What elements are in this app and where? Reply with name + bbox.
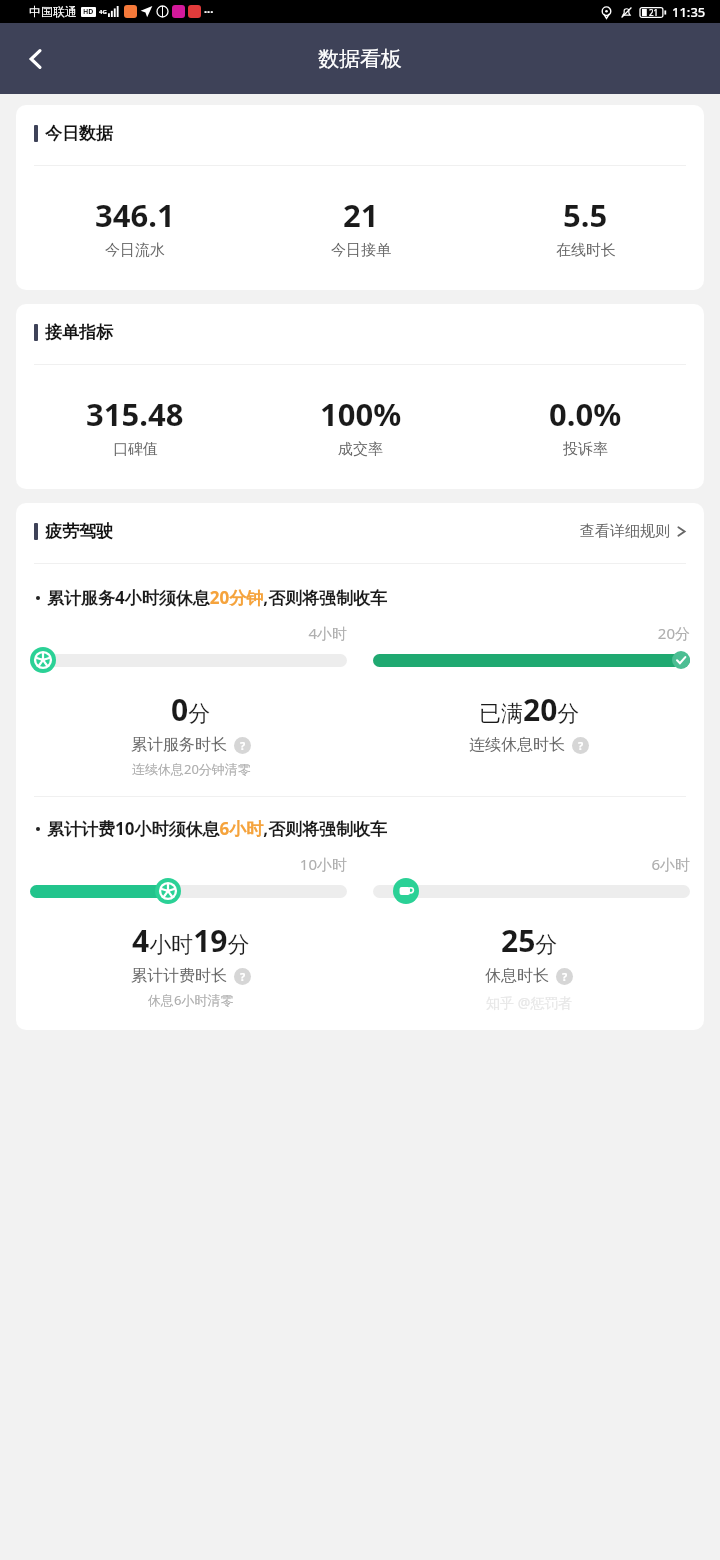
other: 帮助: [234, 968, 251, 985]
staticText: 4小时: [30, 623, 347, 643]
staticText: 25分: [501, 920, 558, 961]
staticText: 0.0%: [549, 393, 622, 435]
staticText: 0分: [171, 689, 211, 730]
other: 帮助: [234, 737, 251, 754]
staticText: 休息6小时清零: [148, 991, 234, 1009]
staticText: 在线时长: [556, 241, 616, 260]
button[interactable]: 返回: [12, 35, 60, 83]
staticText: 4G: [99, 8, 107, 16]
staticText: 成交率: [338, 440, 383, 459]
staticText: 疲劳驾驶: [45, 521, 113, 542]
staticText: 已满20分: [479, 689, 580, 730]
staticText: HD: [83, 7, 94, 17]
staticText: 中国联通: [29, 4, 77, 19]
staticText: 20分: [373, 623, 690, 643]
staticText: 累计计费10小时须休息6小时,否则将强制收车: [47, 817, 388, 840]
button[interactable]: 累计服务时长: [131, 735, 251, 755]
staticText: 查看详细规则: [580, 522, 670, 541]
staticText: ?: [578, 738, 584, 753]
staticText: 口碑值: [113, 440, 158, 459]
other: 帮助: [556, 968, 573, 985]
staticText: 休息时长: [485, 966, 549, 986]
staticText: 11:35: [672, 3, 706, 21]
staticText: 数据看板: [318, 46, 402, 72]
button[interactable]: 接单指标: [16, 304, 704, 489]
button[interactable]: 连续休息时长: [469, 735, 589, 755]
staticText: 21: [649, 7, 659, 18]
staticText: 累计计费时长: [131, 966, 227, 986]
staticText: 5.5: [563, 194, 608, 236]
staticText: 今日数据: [45, 123, 113, 144]
staticText: ?: [240, 738, 246, 753]
staticText: 连续休息20分钟清零: [132, 760, 251, 778]
staticText: 连续休息时长: [469, 735, 565, 755]
staticText: 今日接单: [331, 241, 391, 260]
button[interactable]: 今日数据: [16, 105, 704, 290]
other: 帮助: [572, 737, 589, 754]
staticText: ?: [562, 969, 568, 984]
staticText: 346.1: [95, 194, 175, 236]
staticText: 投诉率: [563, 440, 608, 459]
staticText: 21: [343, 194, 379, 236]
button[interactable]: 查看详细规则: [580, 522, 686, 541]
staticText: ?: [240, 969, 246, 984]
staticText: 累计服务时长: [131, 735, 227, 755]
staticText: 接单指标: [45, 322, 113, 343]
staticText: ···: [204, 4, 214, 19]
staticText: 今日流水: [105, 241, 165, 260]
staticText: 6小时: [373, 854, 690, 874]
button[interactable]: 休息时长: [485, 966, 573, 986]
button[interactable]: 累计计费时长: [131, 966, 251, 986]
staticText: 10小时: [30, 854, 347, 874]
staticText: 知乎 @惩罚者: [486, 993, 573, 1012]
staticText: 4小时19分: [132, 920, 250, 961]
staticText: 累计服务4小时须休息20分钟,否则将强制收车: [47, 586, 388, 609]
staticText: 315.48: [86, 393, 184, 435]
staticText: 100%: [320, 393, 402, 435]
